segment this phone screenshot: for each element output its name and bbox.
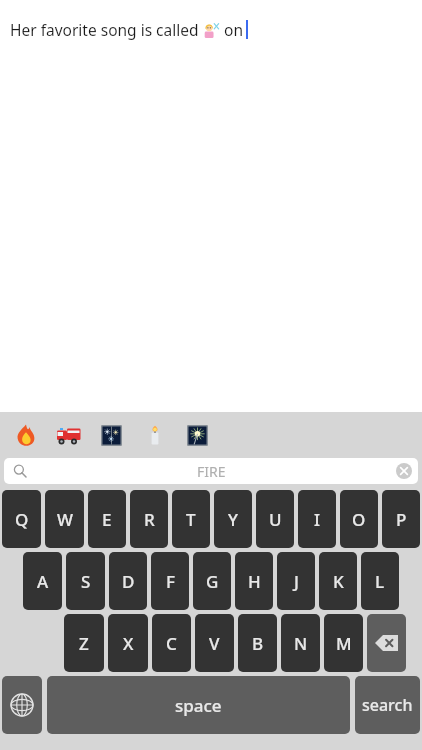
button[interactable]: space	[47, 676, 350, 734]
staticText: D	[122, 570, 135, 593]
staticText: L	[375, 570, 385, 593]
button[interactable]: J	[277, 552, 315, 610]
staticText: search	[362, 694, 413, 716]
button[interactable]: Q	[2, 490, 41, 548]
button[interactable]: A	[23, 552, 62, 610]
button[interactable]: M	[324, 614, 363, 672]
button[interactable]: O	[340, 490, 378, 548]
button[interactable]: H	[235, 552, 273, 610]
staticText: Q	[15, 508, 29, 531]
staticText: W	[57, 508, 73, 531]
button[interactable]: T	[172, 490, 210, 548]
button[interactable]: Y	[214, 490, 252, 548]
button[interactable]: search	[355, 676, 420, 734]
button[interactable]: Switch keyboard	[2, 676, 42, 734]
staticText: space	[175, 694, 222, 717]
button[interactable]: W	[45, 490, 84, 548]
button[interactable]: U	[256, 490, 294, 548]
button[interactable]: Fire truck emoji	[47, 412, 90, 458]
staticText: M	[336, 632, 352, 655]
button[interactable]: FIRE	[4, 458, 418, 484]
staticText: Y	[228, 508, 238, 531]
button[interactable]: R	[130, 490, 168, 548]
staticText: E	[102, 508, 112, 531]
button[interactable]: D	[109, 552, 147, 610]
staticText: P	[396, 508, 407, 531]
button[interactable]: Sparkler emoji	[176, 412, 219, 458]
button[interactable]: L	[361, 552, 399, 610]
staticText: A	[37, 570, 49, 593]
staticText: on	[220, 19, 243, 40]
button[interactable]: V	[195, 614, 234, 672]
staticText: F	[166, 570, 175, 593]
staticText: O	[352, 508, 366, 531]
staticText: N	[294, 632, 308, 655]
button[interactable]: N	[281, 614, 320, 672]
staticText: T	[186, 508, 196, 531]
staticText: J	[294, 570, 299, 593]
staticText: K	[333, 570, 344, 593]
button[interactable]: F	[151, 552, 189, 610]
staticText: U	[269, 508, 282, 531]
button[interactable]: Backspace	[367, 614, 406, 672]
staticText: FIRE	[197, 462, 226, 481]
button[interactable]: Clear search	[396, 463, 412, 479]
button[interactable]: G	[193, 552, 231, 610]
staticText: S	[81, 570, 91, 593]
staticText: Her favorite song is called	[10, 19, 203, 40]
button[interactable]: Z	[64, 614, 104, 672]
button[interactable]: C	[152, 614, 191, 672]
staticText: Z	[79, 632, 89, 655]
button[interactable]: I	[298, 490, 336, 548]
button[interactable]: E	[88, 490, 126, 548]
button[interactable]: P	[382, 490, 420, 548]
staticText: G	[206, 570, 219, 593]
button[interactable]: Fire emoji	[4, 412, 47, 458]
staticText: V	[209, 632, 220, 655]
button[interactable]: K	[319, 552, 357, 610]
staticText: H	[248, 570, 261, 593]
button[interactable]: B	[238, 614, 277, 672]
staticText: B	[252, 632, 264, 655]
button[interactable]: S	[66, 552, 105, 610]
staticText: C	[166, 632, 177, 655]
staticText: X	[123, 632, 134, 655]
button[interactable]: X	[108, 614, 148, 672]
button[interactable]: Candle emoji	[133, 412, 176, 458]
staticText: R	[144, 508, 155, 531]
button[interactable]: Fireworks emoji	[90, 412, 133, 458]
staticText: I	[314, 508, 321, 531]
